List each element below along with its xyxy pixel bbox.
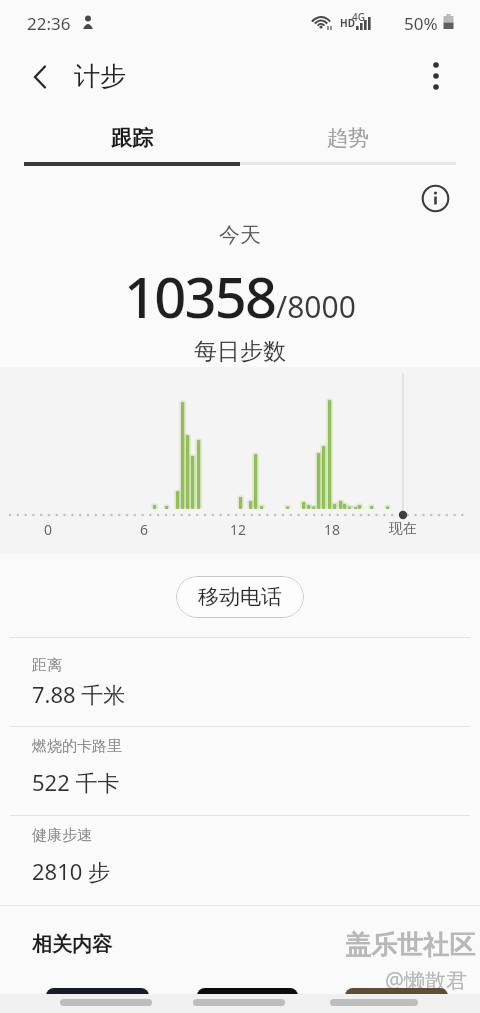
staticText: 跟踪 xyxy=(111,125,153,151)
button[interactable]: 趋势 xyxy=(240,118,456,158)
button[interactable] xyxy=(415,178,455,218)
button[interactable]: 跟踪 xyxy=(24,118,240,158)
staticText: @懒散君 xyxy=(385,966,467,995)
staticText: 22:36 xyxy=(27,12,71,35)
button[interactable] xyxy=(193,999,285,1006)
staticText: 522 千卡 xyxy=(32,767,120,797)
staticText: 燃烧的卡路里 xyxy=(32,737,122,756)
staticText: 健康步速 xyxy=(32,826,92,845)
button[interactable] xyxy=(197,988,298,1013)
staticText: 2810 步 xyxy=(32,856,111,886)
staticText: 6 xyxy=(140,520,149,539)
staticText: 移动电话 xyxy=(198,584,282,610)
staticText: 50% xyxy=(404,12,438,35)
staticText: 12 xyxy=(230,520,247,539)
staticText: 10358 xyxy=(124,258,276,334)
button[interactable]: 移动电话 xyxy=(176,576,304,618)
staticText: 趋势 xyxy=(327,125,369,151)
staticText: 7.88 千米 xyxy=(32,679,126,709)
staticText: 今天 xyxy=(219,222,261,248)
staticText: /8000 xyxy=(276,286,356,327)
staticText: 4G xyxy=(352,10,365,24)
button[interactable] xyxy=(46,988,149,1013)
button[interactable] xyxy=(416,56,456,96)
staticText: 计步 xyxy=(74,60,126,93)
button[interactable] xyxy=(60,999,152,1006)
staticText: HD xyxy=(340,16,355,30)
staticText: 0 xyxy=(44,520,53,539)
button[interactable] xyxy=(20,57,60,97)
staticText: 距离 xyxy=(32,656,62,675)
staticText: 盖乐世社区 xyxy=(345,929,475,962)
button[interactable] xyxy=(345,988,448,1013)
staticText: 相关内容 xyxy=(32,932,112,957)
staticText: 现在 xyxy=(389,520,417,538)
staticText: 每日步数 xyxy=(194,337,286,366)
staticText: 18 xyxy=(324,520,341,539)
button[interactable] xyxy=(330,999,418,1006)
